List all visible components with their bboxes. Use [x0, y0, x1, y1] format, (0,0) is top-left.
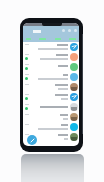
- button[interactable]: Search, calls and menu: [23, 26, 79, 42]
- button[interactable]: Search, calls and menu: [62, 29, 77, 32]
- button[interactable]: [23, 112, 79, 122]
- button[interactable]: [55, 38, 61, 40]
- button[interactable]: [23, 52, 79, 62]
- button[interactable]: [23, 42, 79, 52]
- button[interactable]: [23, 92, 79, 102]
- button[interactable]: [23, 72, 79, 82]
- button[interactable]: [23, 102, 79, 112]
- button[interactable]: New message: [27, 135, 37, 145]
- button[interactable]: [23, 82, 79, 92]
- button[interactable]: [23, 132, 79, 142]
- button[interactable]: [26, 38, 31, 40]
- button[interactable]: [23, 122, 79, 132]
- button[interactable]: [23, 62, 79, 72]
